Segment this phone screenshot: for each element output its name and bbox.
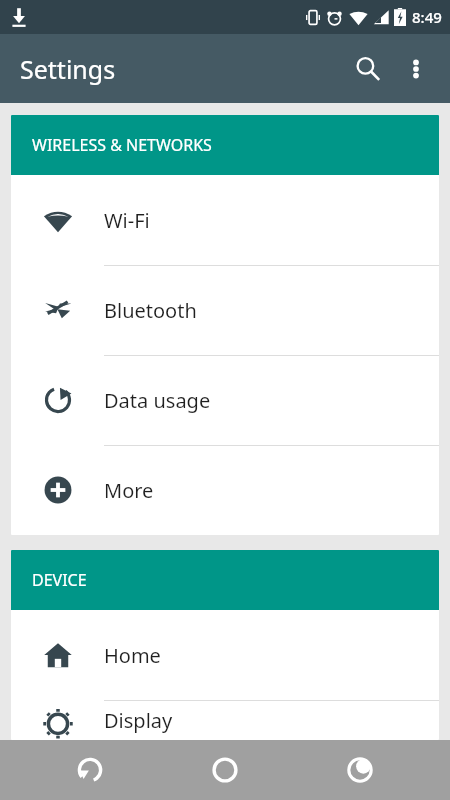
button[interactable]: Display [11, 700, 439, 740]
button[interactable]: Search [344, 45, 392, 93]
staticText: 8:49 [412, 7, 442, 27]
staticText: Settings [20, 52, 116, 86]
staticText: Wi-Fi [104, 207, 150, 234]
staticText: More [104, 477, 154, 504]
button[interactable]: Recent apps [315, 740, 405, 800]
button[interactable]: More [11, 445, 439, 535]
staticText: Display [104, 707, 173, 734]
button[interactable]: Data usage [11, 355, 439, 445]
button[interactable]: More options [392, 45, 440, 93]
button[interactable]: Home [11, 610, 439, 700]
staticText: DEVICE [32, 569, 87, 591]
staticText: Data usage [104, 387, 211, 414]
button[interactable]: Bluetooth [11, 265, 439, 355]
staticText: WIRELESS & NETWORKS [32, 134, 212, 156]
staticText: Bluetooth [104, 297, 197, 324]
button[interactable]: Wi-Fi [11, 175, 439, 265]
staticText: Home [104, 642, 161, 669]
button[interactable]: Home [180, 740, 270, 800]
button[interactable]: Back [45, 740, 135, 800]
